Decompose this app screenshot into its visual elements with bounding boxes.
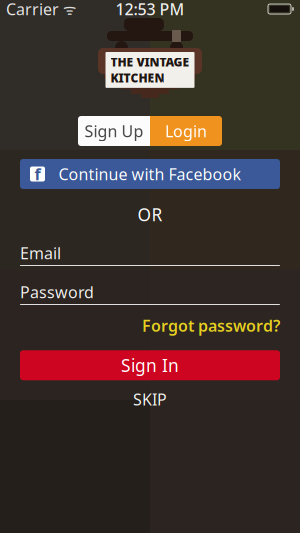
staticText: f bbox=[34, 163, 40, 185]
staticText: Continue with Facebook bbox=[58, 163, 241, 185]
button[interactable]: Login bbox=[150, 116, 222, 146]
staticText: ★ bbox=[146, 79, 154, 90]
staticText: OR bbox=[137, 203, 162, 226]
button[interactable]: Forgot password? bbox=[142, 315, 280, 336]
button[interactable]: Sign In bbox=[20, 350, 280, 380]
staticText: Carrier bbox=[6, 0, 59, 20]
staticText: Sign Up bbox=[84, 120, 143, 142]
button[interactable]: Continue with Facebook bbox=[20, 159, 280, 189]
staticText: Sign In bbox=[121, 354, 179, 377]
button[interactable]: Password bbox=[20, 283, 280, 305]
staticText: SKIP bbox=[133, 389, 167, 410]
staticText: THE VINTAGE KITCHEN bbox=[110, 54, 189, 86]
staticText: Forgot password? bbox=[142, 315, 280, 336]
staticText: Password bbox=[20, 281, 94, 303]
button[interactable]: SKIP bbox=[110, 388, 190, 410]
staticText: Email bbox=[20, 242, 61, 264]
staticText: Login bbox=[165, 120, 207, 142]
staticText: ★ bbox=[158, 79, 166, 90]
staticText: ★ bbox=[134, 79, 142, 90]
button[interactable]: Email bbox=[20, 244, 280, 266]
staticText: 12:53 PM bbox=[115, 0, 184, 20]
staticText: ᯤ bbox=[59, 0, 76, 19]
button[interactable]: Sign Up bbox=[78, 116, 150, 146]
